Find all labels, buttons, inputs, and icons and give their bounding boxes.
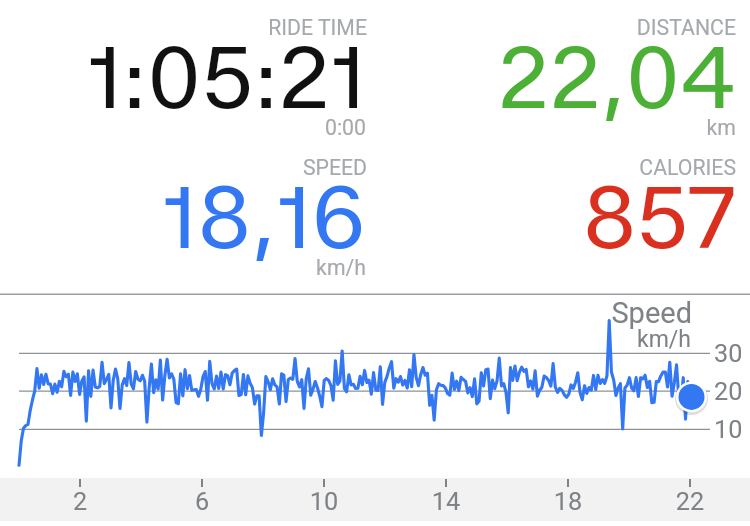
staticText: 22,04 [406,26,736,129]
staticText: DISTANCE [406,15,736,40]
staticText: 0:00 [36,115,366,140]
button[interactable]: RIDE TIME [0,0,375,140]
staticText: CALORIES [406,155,736,180]
staticText: km/h [36,255,366,280]
staticText: 10 [294,487,354,517]
button[interactable]: SPEED [0,140,375,280]
staticText: 857 [406,166,736,269]
staticText: 22 [660,487,720,517]
staticText: SPEED [37,155,367,180]
staticText: 18 [538,487,598,517]
staticText: 14 [416,487,476,517]
staticText: 10 [714,415,743,445]
staticText: 2 [50,487,110,517]
staticText: km [406,115,736,140]
staticText: km/h [491,326,691,353]
staticText: RIDE TIME [37,15,367,40]
button[interactable]: DISTANCE [375,0,750,140]
staticText: Speed [492,296,692,330]
button[interactable]: CALORIES [375,140,750,280]
staticText: 20 [714,377,743,407]
staticText: 6 [172,487,232,517]
staticText: 1:05:21 [36,26,366,129]
staticText: 30 [714,339,743,369]
staticText: 18,16 [36,166,366,269]
